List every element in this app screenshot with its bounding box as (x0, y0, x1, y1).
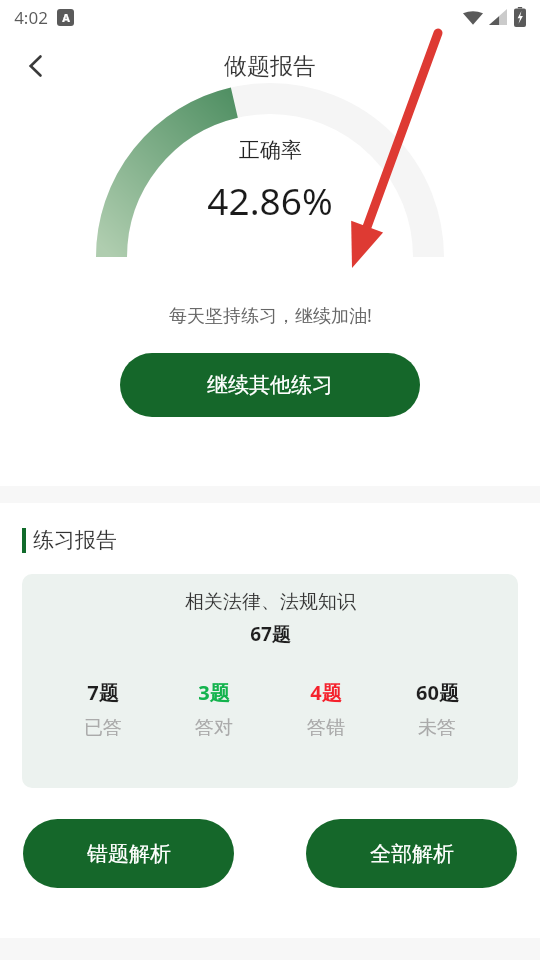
staticText: 每天坚持练习，继续加油! (169, 303, 372, 328)
staticText: 已答 (84, 716, 122, 740)
staticText: 练习报告 (33, 527, 117, 553)
staticText: 67题 (250, 621, 291, 647)
staticText: 未答 (418, 716, 456, 740)
staticText: 7题 (87, 679, 119, 706)
staticText: 60题 (416, 679, 459, 706)
staticText: 3题 (198, 679, 230, 706)
button[interactable]: 错题解析 (23, 819, 234, 888)
staticText: 错题解析 (87, 841, 171, 867)
button[interactable]: 相关法律、法规知识 (22, 574, 518, 788)
staticText: 全部解析 (370, 841, 454, 867)
staticText: A (62, 10, 70, 25)
button[interactable]: 全部解析 (306, 819, 517, 888)
button[interactable]: Back (12, 42, 60, 90)
staticText: 正确率 (239, 137, 302, 163)
staticText: 答对 (195, 716, 233, 740)
staticText: 答错 (307, 716, 345, 740)
staticText: 4题 (310, 679, 342, 706)
staticText: 做题报告 (224, 52, 316, 81)
staticText: 4:02 (14, 6, 48, 29)
staticText: 继续其他练习 (207, 372, 333, 398)
button[interactable]: 继续其他练习 (120, 353, 420, 417)
staticText: 42.86% (207, 175, 333, 225)
staticText: 相关法律、法规知识 (185, 590, 356, 614)
